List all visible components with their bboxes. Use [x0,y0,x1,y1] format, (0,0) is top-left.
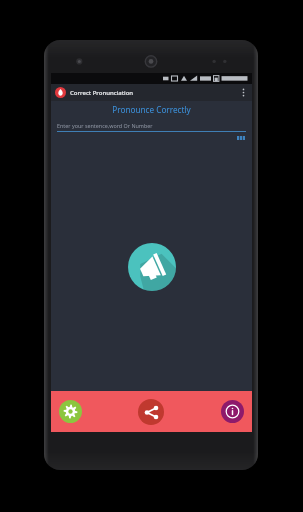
button[interactable]: Info [221,400,244,423]
button[interactable]: Enter your sentence,word Or Number [57,120,246,131]
button[interactable]: Share [138,399,164,425]
staticText: Correct Pronunciation [70,89,134,97]
button[interactable]: More options [238,84,248,101]
staticText: Pronounce Correctly [112,104,191,115]
button[interactable]: Settings [59,400,82,423]
staticText: Enter your sentence,word Or Number [57,122,153,129]
button[interactable]: Speak [128,243,176,291]
button[interactable]: Options [235,132,246,143]
